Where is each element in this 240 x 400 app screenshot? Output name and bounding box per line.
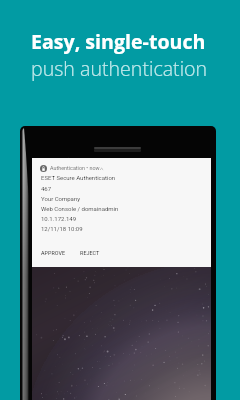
staticText: Easy, single-touch bbox=[31, 28, 206, 55]
other: Collapse notification bbox=[100, 167, 104, 171]
staticText: APPROVE bbox=[41, 250, 66, 256]
button[interactable]: APPROVE bbox=[37, 245, 70, 261]
button[interactable]: REJECT bbox=[76, 245, 104, 261]
staticText: ESET Secure Authentication bbox=[41, 174, 116, 181]
staticText: 10.1.172.149 bbox=[41, 215, 77, 222]
staticText: REJECT bbox=[80, 250, 100, 256]
staticText: 12/11/18 10:09 bbox=[41, 225, 83, 232]
staticText: push authentication bbox=[31, 55, 208, 82]
staticText: Your Company bbox=[41, 195, 81, 202]
staticText: Web Console / domainadmin bbox=[41, 205, 119, 212]
staticText: Authentication • now bbox=[50, 165, 100, 171]
staticText: 467 bbox=[41, 185, 52, 192]
